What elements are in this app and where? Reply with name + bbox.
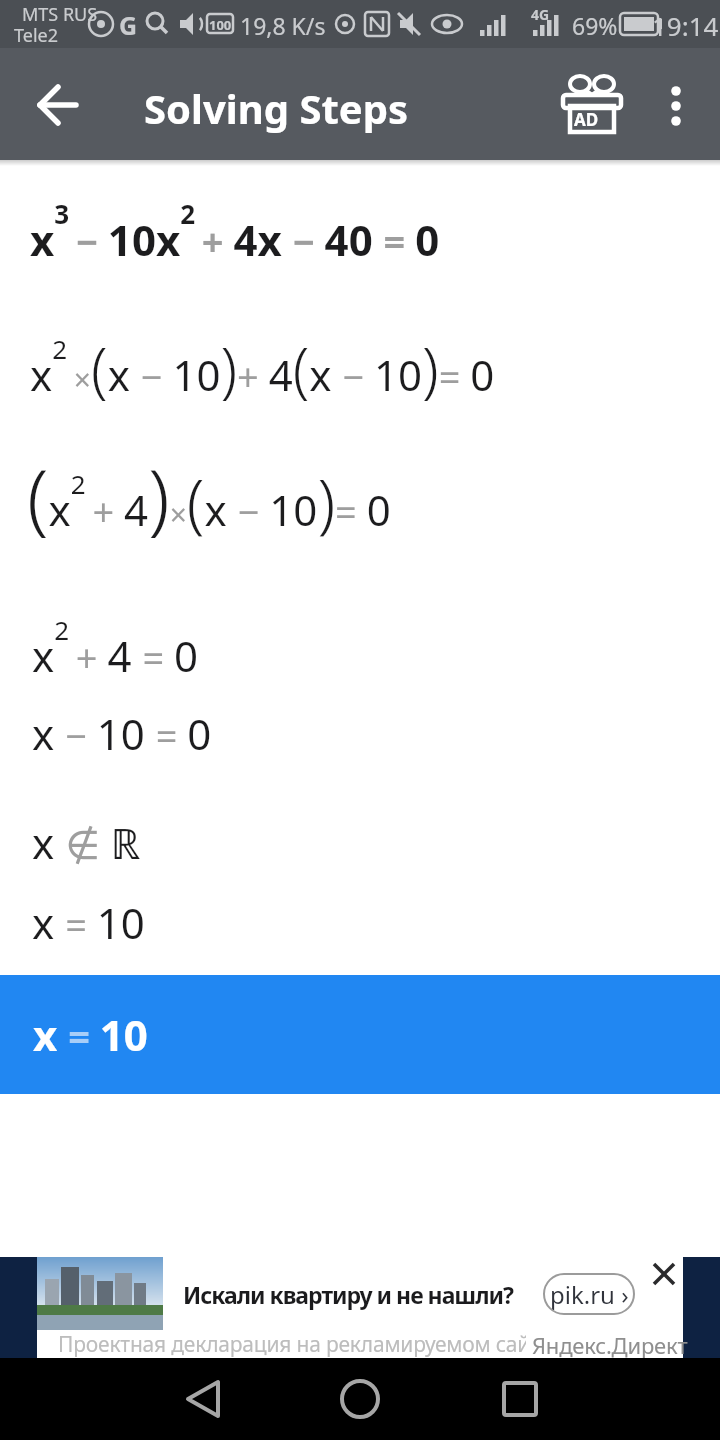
staticText: G (119, 8, 138, 42)
button[interactable] (490, 1369, 550, 1429)
button[interactable] (171, 1369, 231, 1429)
button[interactable]: x = 10 (0, 975, 720, 1094)
staticText: pik.ru › (550, 1278, 629, 1311)
staticText: x ∉ ℝ (32, 814, 141, 871)
staticText: AD (574, 108, 599, 131)
staticText: Искали квартиру и не нашли? (183, 1279, 514, 1310)
staticText: Проектная декларация на рекламируемом са… (58, 1330, 526, 1358)
staticText: MTS RUS (22, 2, 98, 27)
button[interactable]: pik.ru › (543, 1273, 635, 1315)
staticText: 19:14 (652, 8, 719, 43)
button[interactable]: Искали квартиру и не нашли? (0, 1257, 720, 1358)
staticText: x3 − 10x2 + 4x − 40 = 0 (30, 196, 440, 268)
button[interactable] (0, 48, 90, 160)
button[interactable] (648, 68, 704, 140)
button[interactable] (644, 1257, 683, 1297)
staticText: 100 (209, 16, 232, 34)
staticText: x = 10 (32, 894, 145, 951)
staticText: 19,8 K/s (240, 10, 326, 41)
staticText: 4G (531, 5, 550, 24)
staticText: Tele2 (14, 23, 58, 48)
staticText: Solving Steps (144, 81, 409, 135)
staticText: (x2 + 4)×(x − 10)= 0 (27, 443, 391, 549)
staticText: x − 10 = 0 (32, 705, 212, 762)
button[interactable] (330, 1369, 390, 1429)
staticText: x = 10 (33, 1006, 148, 1063)
staticText: Яндекс.Директ (532, 1330, 688, 1360)
staticText: x2 ×(x − 10)+ 4(x − 10)= 0 (30, 327, 495, 409)
button[interactable]: AD (552, 68, 632, 140)
staticText: 69% (572, 10, 618, 41)
staticText: x2 + 4 = 0 (32, 612, 199, 684)
